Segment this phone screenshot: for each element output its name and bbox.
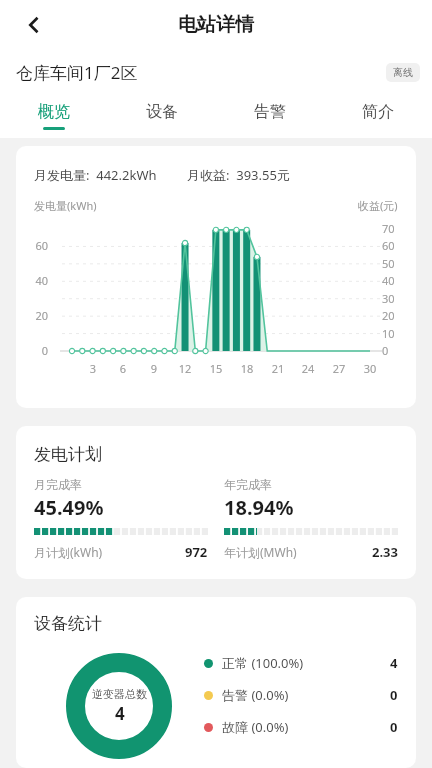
staticText: 27 — [329, 361, 349, 376]
staticText: 9 — [144, 361, 164, 376]
staticText: 12 — [175, 361, 195, 376]
staticText: 30 — [360, 361, 380, 376]
staticText: 18 — [237, 361, 257, 376]
staticText: 收益(元) — [358, 198, 398, 213]
staticText: 40 — [382, 273, 416, 288]
staticText: 4 — [115, 702, 125, 725]
button[interactable]: 离线 — [386, 63, 420, 82]
staticText: 20 — [16, 308, 48, 323]
staticText: 0 — [382, 343, 416, 358]
button[interactable]: 月发电量: 442.2kWh — [16, 146, 416, 408]
button[interactable]: 正常 (100.0%) — [204, 654, 398, 672]
staticText: 月计划(kWh) — [34, 544, 103, 560]
staticText: 设备 — [146, 102, 178, 122]
button[interactable]: 告警 — [216, 94, 324, 138]
staticText: 0 — [16, 343, 48, 358]
staticText: 70 — [382, 221, 416, 236]
staticText: 21 — [268, 361, 288, 376]
staticText: 发电计划 — [34, 444, 102, 465]
staticText: 2.33 — [372, 543, 398, 561]
staticText: 月完成率 — [34, 477, 82, 492]
staticText: 3 — [83, 361, 103, 376]
button[interactable]: 概览 — [0, 94, 108, 138]
staticText: 故障 (0.0%) — [222, 718, 289, 736]
staticText: 24 — [298, 361, 318, 376]
staticText: 正常 (100.0%) — [222, 654, 304, 672]
staticText: 18.94% — [224, 494, 294, 521]
button[interactable]: Back — [14, 5, 54, 45]
button[interactable]: 发电计划 — [16, 426, 416, 579]
staticText: 972 — [185, 543, 208, 561]
staticText: 电站详情 — [178, 13, 254, 37]
staticText: 月发电量: 442.2kWh — [34, 166, 157, 184]
staticText: 0 — [390, 686, 398, 704]
staticText: 4 — [390, 654, 398, 672]
staticText: 年完成率 — [224, 477, 272, 492]
staticText: 离线 — [393, 66, 413, 79]
staticText: 概览 — [38, 102, 70, 122]
button[interactable]: 设备统计 — [16, 597, 416, 768]
button[interactable]: 设备 — [108, 94, 216, 138]
staticText: 10 — [382, 326, 416, 341]
staticText: 月收益: 393.55元 — [187, 166, 290, 184]
staticText: 50 — [382, 256, 416, 271]
staticText: 0 — [390, 718, 398, 736]
staticText: 40 — [16, 273, 48, 288]
staticText: 15 — [206, 361, 226, 376]
staticText: 逆变器总数 — [92, 687, 147, 701]
staticText: 简介 — [362, 102, 394, 122]
button[interactable]: 简介 — [324, 94, 432, 138]
staticText: 仓库车间1厂2区 — [16, 61, 138, 84]
staticText: 告警 (0.0%) — [222, 686, 289, 704]
button[interactable]: 故障 (0.0%) — [204, 718, 398, 736]
staticText: 发电量(kWh) — [34, 198, 97, 213]
staticText: 30 — [382, 291, 416, 306]
staticText: 45.49% — [34, 494, 104, 521]
staticText: 60 — [382, 238, 416, 253]
staticText: 20 — [382, 308, 416, 323]
staticText: 告警 — [254, 102, 286, 122]
staticText: 设备统计 — [34, 613, 102, 634]
staticText: 60 — [16, 238, 48, 253]
staticText: 年计划(MWh) — [224, 544, 297, 560]
staticText: 6 — [113, 361, 133, 376]
button[interactable]: 告警 (0.0%) — [204, 686, 398, 704]
